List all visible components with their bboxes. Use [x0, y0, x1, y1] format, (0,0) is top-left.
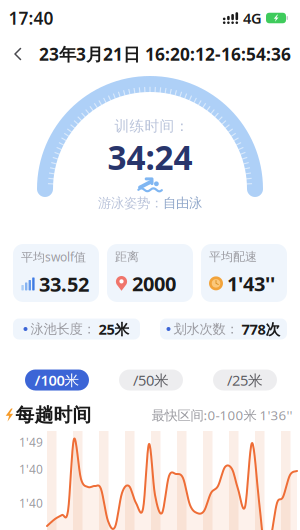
staticText: 游泳姿势：: [98, 195, 163, 211]
staticText: 泳池长度：: [30, 321, 95, 337]
staticText: 平均配速: [209, 249, 257, 264]
staticText: 17:40: [8, 6, 53, 29]
staticText: 1'49: [19, 434, 43, 450]
button[interactable]: 平均配速: [201, 244, 287, 302]
staticText: 1'40: [19, 461, 43, 477]
staticText: 25米: [98, 319, 129, 339]
staticText: 4G: [243, 8, 262, 28]
staticText: 34:24: [107, 135, 192, 179]
staticText: /100米: [34, 370, 79, 390]
staticText: 23年3月21日 16:20:12-16:54:36: [39, 42, 291, 65]
staticText: 距离: [115, 249, 139, 264]
staticText: /25米: [227, 370, 263, 390]
staticText: 平均swolf值: [21, 249, 86, 265]
button[interactable]: Back: [3, 39, 33, 69]
button[interactable]: 距离: [107, 244, 193, 302]
button[interactable]: /50米: [119, 369, 183, 390]
button[interactable]: 泳池长度：: [13, 318, 140, 339]
staticText: /50米: [133, 370, 169, 390]
staticText: 33.52: [39, 271, 89, 297]
button[interactable]: /25米: [213, 369, 277, 390]
staticText: 最快区间:0-100米 1'36'': [151, 406, 292, 424]
staticText: 778次: [241, 319, 280, 339]
staticText: 1'40: [19, 495, 43, 511]
staticText: 2000: [132, 270, 176, 297]
staticText: 每趟时间: [15, 403, 91, 426]
staticText: 划水次数：: [173, 321, 238, 337]
staticText: 1'43'': [227, 270, 275, 297]
staticText: 训练时间：: [114, 117, 189, 135]
staticText: 自由泳: [163, 195, 202, 211]
button[interactable]: /100米: [25, 369, 89, 390]
button[interactable]: 平均swolf值: [13, 244, 99, 302]
button[interactable]: 划水次数：: [160, 318, 287, 339]
